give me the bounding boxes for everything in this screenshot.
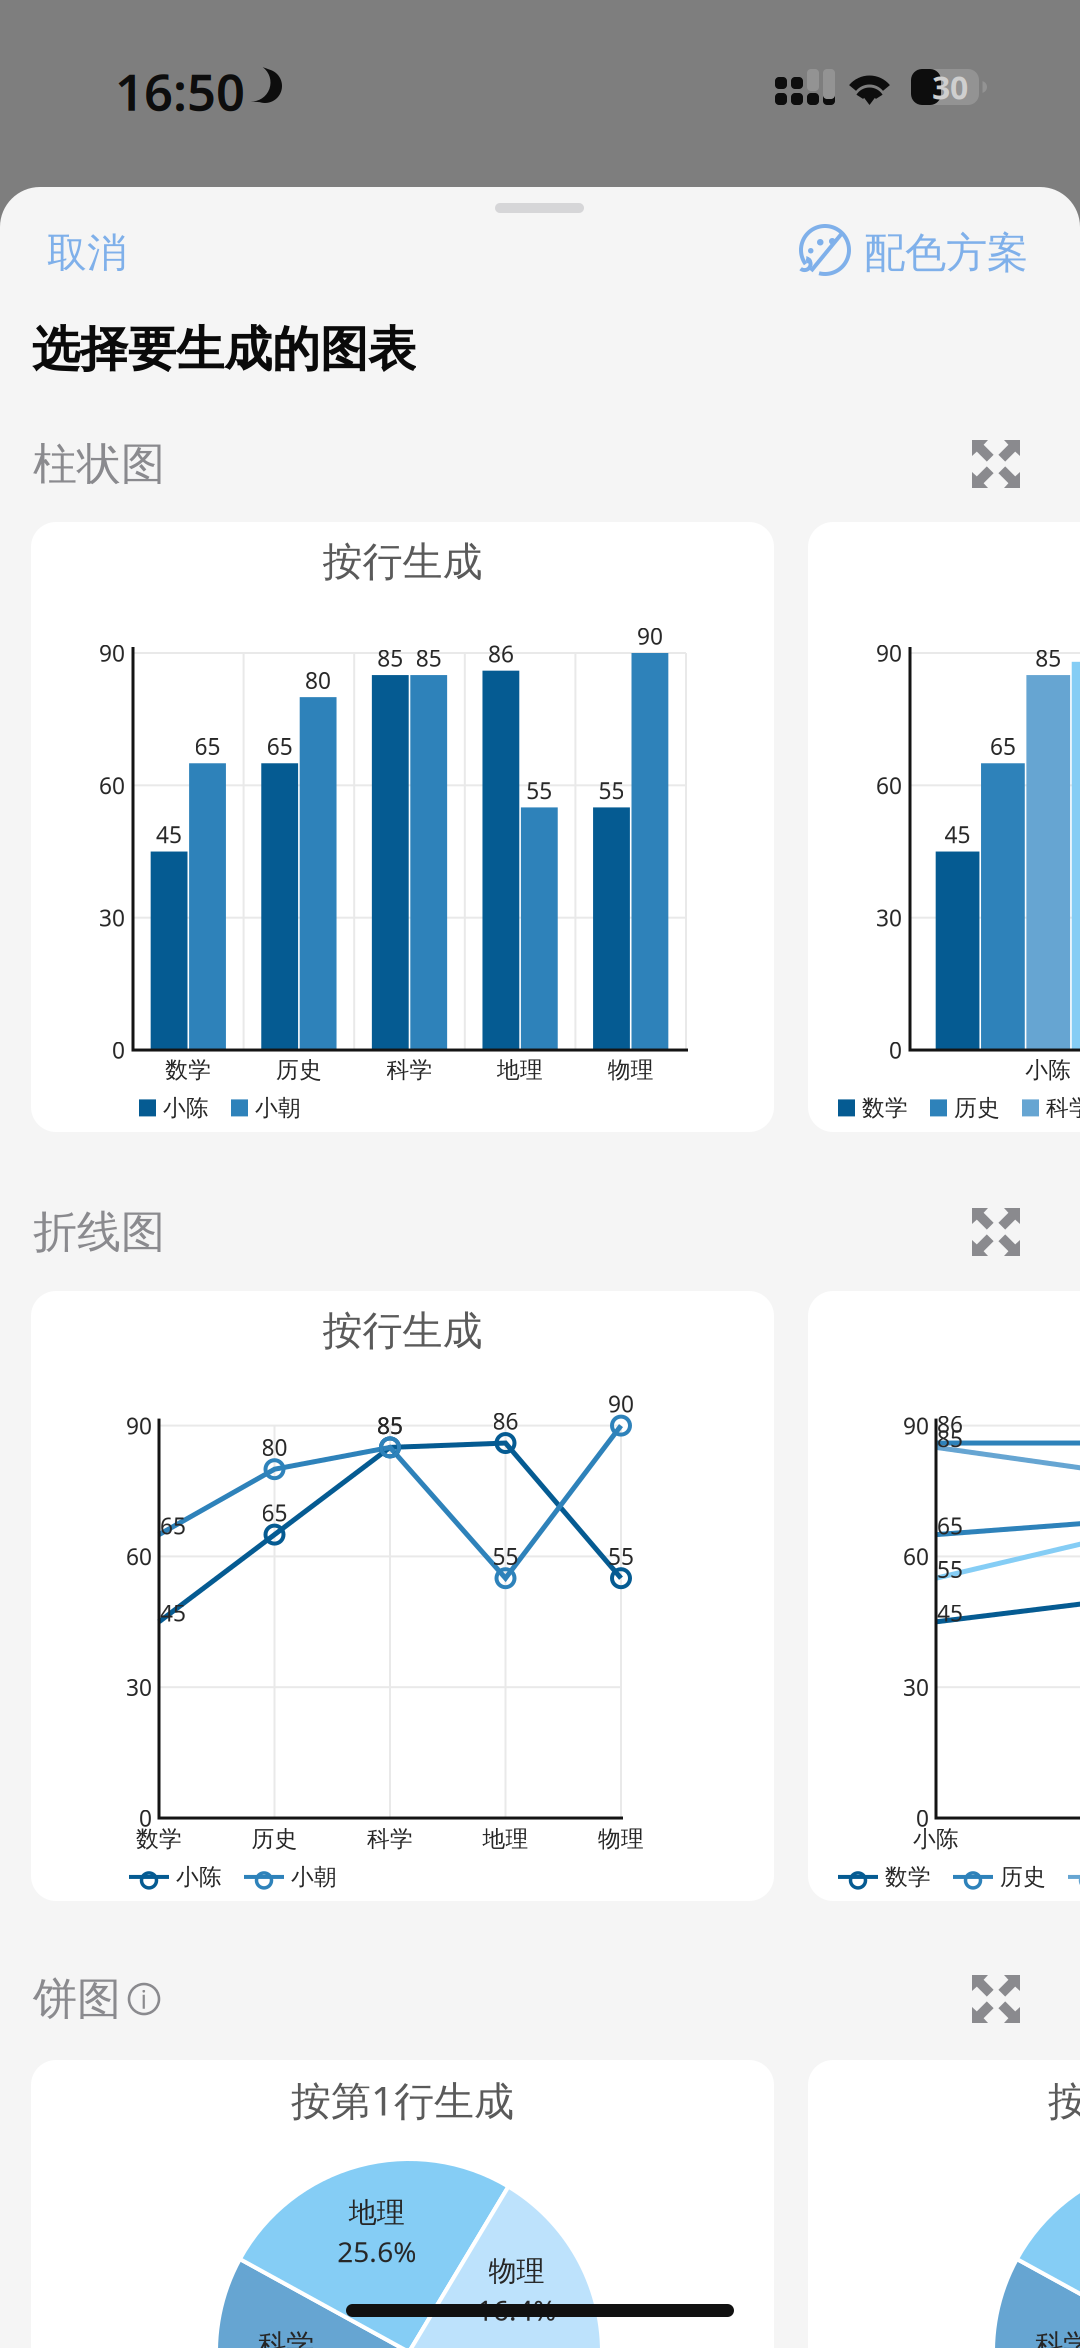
staticText: 科学 bbox=[1035, 2327, 1080, 2348]
staticText: 按行生成 bbox=[322, 537, 482, 586]
staticText: 小陈 bbox=[913, 1825, 959, 1853]
staticText: 数学 bbox=[136, 1825, 182, 1853]
button[interactable]: 0 bbox=[808, 522, 1080, 1132]
staticText: 物理 bbox=[598, 1825, 644, 1853]
staticText: 65 bbox=[261, 1497, 287, 1528]
staticText: 85 bbox=[377, 643, 403, 673]
staticText: 55 bbox=[526, 775, 552, 805]
staticText: 历史 bbox=[954, 1094, 1000, 1122]
staticText: 60 bbox=[126, 1541, 152, 1571]
staticText: 45 bbox=[156, 819, 182, 849]
staticText: 85 bbox=[377, 1410, 403, 1440]
staticText: 65 bbox=[990, 731, 1016, 761]
staticText: 65 bbox=[160, 1510, 186, 1541]
staticText: i bbox=[140, 1982, 147, 2016]
staticText: 地理 bbox=[482, 1825, 528, 1853]
staticText: 55 bbox=[598, 775, 624, 805]
staticText: 86 bbox=[937, 1409, 963, 1439]
staticText: 选择要生成的图表 bbox=[32, 320, 416, 379]
staticText: 90 bbox=[126, 1410, 152, 1441]
staticText: 科学 bbox=[1046, 1094, 1080, 1122]
staticText: 数学 bbox=[165, 1056, 211, 1084]
staticText: 16:50 bbox=[115, 57, 245, 125]
staticText: 折线图 bbox=[33, 1205, 165, 1259]
staticText: 小陈 bbox=[176, 1863, 222, 1891]
staticText: 数学 bbox=[862, 1094, 908, 1122]
staticText: 80 bbox=[261, 1432, 287, 1462]
staticText: 16.4% bbox=[477, 2291, 556, 2328]
staticText: 地理 bbox=[497, 1056, 543, 1084]
staticText: 历史 bbox=[1000, 1863, 1046, 1891]
staticText: 0 bbox=[889, 1035, 902, 1065]
staticText: 85 bbox=[937, 1423, 963, 1453]
staticText: 30 bbox=[99, 903, 125, 933]
button[interactable]: 按行生成 bbox=[31, 1291, 774, 1901]
staticText: 90 bbox=[876, 638, 902, 668]
staticText: 60 bbox=[99, 770, 125, 800]
staticText: 85 bbox=[1035, 643, 1061, 673]
staticText: 取消 bbox=[47, 228, 127, 277]
staticText: 小朝 bbox=[291, 1863, 337, 1891]
staticText: 90 bbox=[608, 1388, 634, 1419]
staticText: 小陈 bbox=[1025, 1056, 1071, 1084]
staticText: 25.6% bbox=[337, 2233, 416, 2270]
staticText: 按第2行生成 bbox=[1048, 2073, 1080, 2126]
staticText: 85 bbox=[377, 1410, 403, 1440]
staticText: 65 bbox=[194, 731, 220, 761]
staticText: 地理 bbox=[349, 2195, 405, 2230]
staticText: 饼图 bbox=[33, 1972, 121, 2026]
staticText: 0 bbox=[112, 1035, 125, 1065]
staticText: 科学 bbox=[386, 1056, 432, 1084]
staticText: 历史 bbox=[251, 1825, 297, 1853]
button[interactable]: 全屏显示 bbox=[962, 1198, 1030, 1266]
staticText: 55 bbox=[937, 1554, 963, 1584]
staticText: 按行生成 bbox=[322, 1306, 482, 1355]
staticText: 30 bbox=[932, 66, 968, 108]
staticText: 按第1行生成 bbox=[291, 2073, 514, 2126]
staticText: 55 bbox=[492, 1541, 518, 1571]
staticText: 科学 bbox=[258, 2327, 314, 2348]
staticText: 数学 bbox=[885, 1863, 931, 1891]
staticText: 90 bbox=[637, 621, 663, 651]
staticText: 65 bbox=[937, 1510, 963, 1541]
staticText: 物理 bbox=[488, 2254, 544, 2288]
button[interactable]: 按第1行生成 bbox=[31, 2060, 774, 2348]
button[interactable]: 0 bbox=[808, 1291, 1080, 1901]
staticText: 86 bbox=[488, 639, 514, 669]
staticText: 55 bbox=[608, 1541, 634, 1571]
button[interactable]: 取消 bbox=[47, 218, 127, 287]
staticText: 80 bbox=[305, 665, 331, 695]
staticText: 30 bbox=[903, 1672, 929, 1702]
staticText: 86 bbox=[492, 1406, 518, 1436]
staticText: 30 bbox=[126, 1672, 152, 1702]
staticText: 45 bbox=[937, 1598, 963, 1628]
button[interactable]: 全屏显示 bbox=[962, 430, 1030, 498]
staticText: 历史 bbox=[276, 1056, 322, 1084]
staticText: 30 bbox=[876, 903, 902, 933]
staticText: 85 bbox=[416, 643, 442, 673]
staticText: 65 bbox=[267, 731, 293, 761]
button[interactable]: 按第2行生成 bbox=[808, 2060, 1080, 2348]
button[interactable]: 全屏显示 bbox=[962, 1965, 1030, 2033]
staticText: 90 bbox=[903, 1410, 929, 1441]
staticText: 小朝 bbox=[255, 1094, 301, 1122]
staticText: 物理 bbox=[608, 1056, 654, 1084]
staticText: 0 bbox=[139, 1803, 152, 1833]
staticText: 配色方案 bbox=[864, 228, 1028, 278]
button[interactable]: 按行生成 bbox=[31, 522, 774, 1132]
staticText: 45 bbox=[945, 819, 971, 849]
staticText: 60 bbox=[903, 1541, 929, 1571]
staticText: 45 bbox=[160, 1598, 186, 1628]
staticText: 90 bbox=[99, 638, 125, 668]
staticText: 0 bbox=[916, 1803, 929, 1833]
staticText: 小陈 bbox=[163, 1094, 209, 1122]
button[interactable]: 配色方案 bbox=[794, 215, 1028, 291]
staticText: 60 bbox=[876, 770, 902, 800]
staticText: 柱状图 bbox=[33, 437, 165, 491]
staticText: 科学 bbox=[367, 1825, 413, 1853]
